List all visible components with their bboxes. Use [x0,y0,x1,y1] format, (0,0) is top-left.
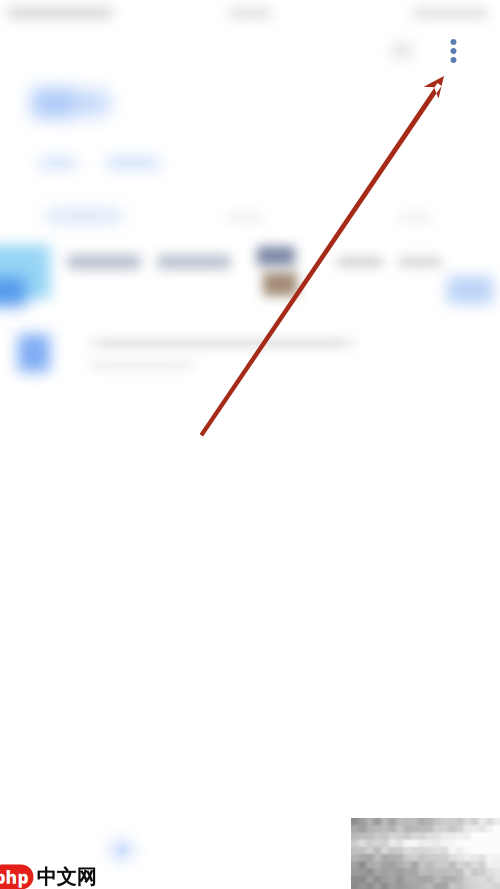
staticText: 中文网 [36,865,96,889]
staticText: php [0,865,28,888]
button[interactable]: More options [436,30,470,72]
